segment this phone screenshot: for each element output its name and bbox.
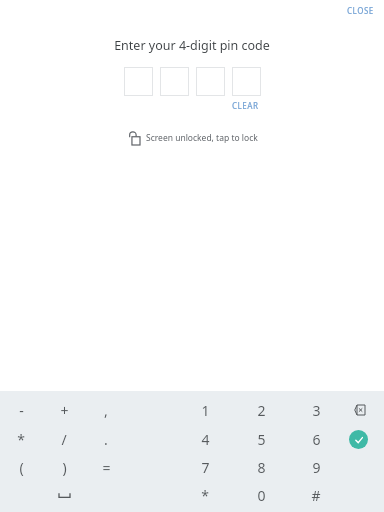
staticText: / bbox=[61, 430, 67, 449]
staticText: . bbox=[104, 430, 108, 449]
button[interactable]: Backspace bbox=[341, 397, 375, 423]
button[interactable]: . bbox=[85, 425, 127, 453]
button[interactable]: * bbox=[0, 425, 42, 453]
button[interactable]: / bbox=[43, 425, 85, 453]
button[interactable]: + bbox=[43, 396, 85, 424]
staticText: 4 bbox=[201, 430, 210, 449]
button[interactable]: = bbox=[85, 453, 127, 481]
staticText: Enter your 4-digit pin code bbox=[114, 37, 270, 54]
button[interactable]: - bbox=[0, 396, 42, 424]
button[interactable]: ( bbox=[0, 453, 42, 481]
staticText: * bbox=[201, 486, 209, 505]
staticText: Screen unlocked, tap to lock bbox=[146, 132, 258, 144]
button[interactable]: 3 bbox=[295, 396, 337, 424]
staticText: CLOSE bbox=[347, 5, 374, 16]
button[interactable]: ) bbox=[43, 453, 85, 481]
button[interactable]: , bbox=[85, 396, 127, 424]
staticText: ) bbox=[62, 458, 67, 477]
staticText: * bbox=[17, 430, 25, 449]
staticText: 1 bbox=[201, 401, 210, 420]
button[interactable]: Space bbox=[43, 481, 85, 509]
button[interactable]: 0 bbox=[240, 481, 282, 509]
staticText: 6 bbox=[312, 430, 321, 449]
button[interactable]: PIN digit 3 bbox=[196, 67, 225, 96]
button[interactable]: 2 bbox=[240, 396, 282, 424]
button[interactable]: CLEAR bbox=[230, 99, 261, 112]
button[interactable]: PIN digit 4 bbox=[232, 67, 261, 96]
staticText: ( bbox=[19, 458, 24, 477]
button[interactable]: PIN digit 1 bbox=[124, 67, 153, 96]
staticText: + bbox=[60, 401, 69, 420]
staticText: 7 bbox=[201, 458, 210, 477]
staticText: 2 bbox=[257, 401, 266, 420]
button[interactable]: * bbox=[184, 481, 226, 509]
staticText: 5 bbox=[257, 430, 266, 449]
button[interactable]: Confirm bbox=[341, 426, 375, 452]
button[interactable]: PIN digit 2 bbox=[160, 67, 189, 96]
staticText: # bbox=[311, 486, 321, 505]
button[interactable]: 4 bbox=[184, 425, 226, 453]
button[interactable]: 6 bbox=[295, 425, 337, 453]
button[interactable]: 1 bbox=[184, 396, 226, 424]
staticText: 3 bbox=[312, 401, 321, 420]
staticText: = bbox=[102, 458, 111, 477]
button[interactable]: 5 bbox=[240, 425, 282, 453]
staticText: CLEAR bbox=[232, 100, 259, 111]
staticText: 0 bbox=[257, 486, 266, 505]
button[interactable]: # bbox=[295, 481, 337, 509]
button[interactable]: 9 bbox=[295, 453, 337, 481]
staticText: 8 bbox=[257, 458, 266, 477]
staticText: , bbox=[104, 401, 108, 420]
button[interactable]: Screen unlocked, tap to lock bbox=[123, 128, 262, 147]
button[interactable]: 7 bbox=[184, 453, 226, 481]
staticText: - bbox=[19, 401, 24, 420]
button[interactable]: 8 bbox=[240, 453, 282, 481]
button[interactable]: CLOSE bbox=[343, 3, 378, 18]
staticText: 9 bbox=[312, 458, 321, 477]
